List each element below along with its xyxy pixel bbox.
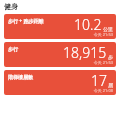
staticText: 階梯樓層數	[8, 74, 33, 80]
button[interactable]: 步行	[4, 42, 116, 67]
staticText: 今天 21:53	[93, 60, 113, 65]
staticText: 健身	[4, 2, 18, 11]
staticText: 公里	[103, 26, 113, 32]
staticText: 今天 21:08	[93, 88, 113, 93]
staticText: 18,915	[63, 43, 107, 62]
button[interactable]: 步行 + 跑步距離	[4, 14, 116, 39]
staticText: 步	[108, 54, 113, 60]
staticText: 今天 21:53	[93, 32, 113, 37]
staticText: 10.2	[74, 15, 102, 34]
staticText: 17	[91, 71, 107, 90]
staticText: 步行 + 跑步距離	[8, 18, 44, 25]
button[interactable]: 階梯樓層數	[4, 70, 116, 95]
staticText: 層	[108, 82, 113, 88]
staticText: 步行	[8, 46, 18, 52]
